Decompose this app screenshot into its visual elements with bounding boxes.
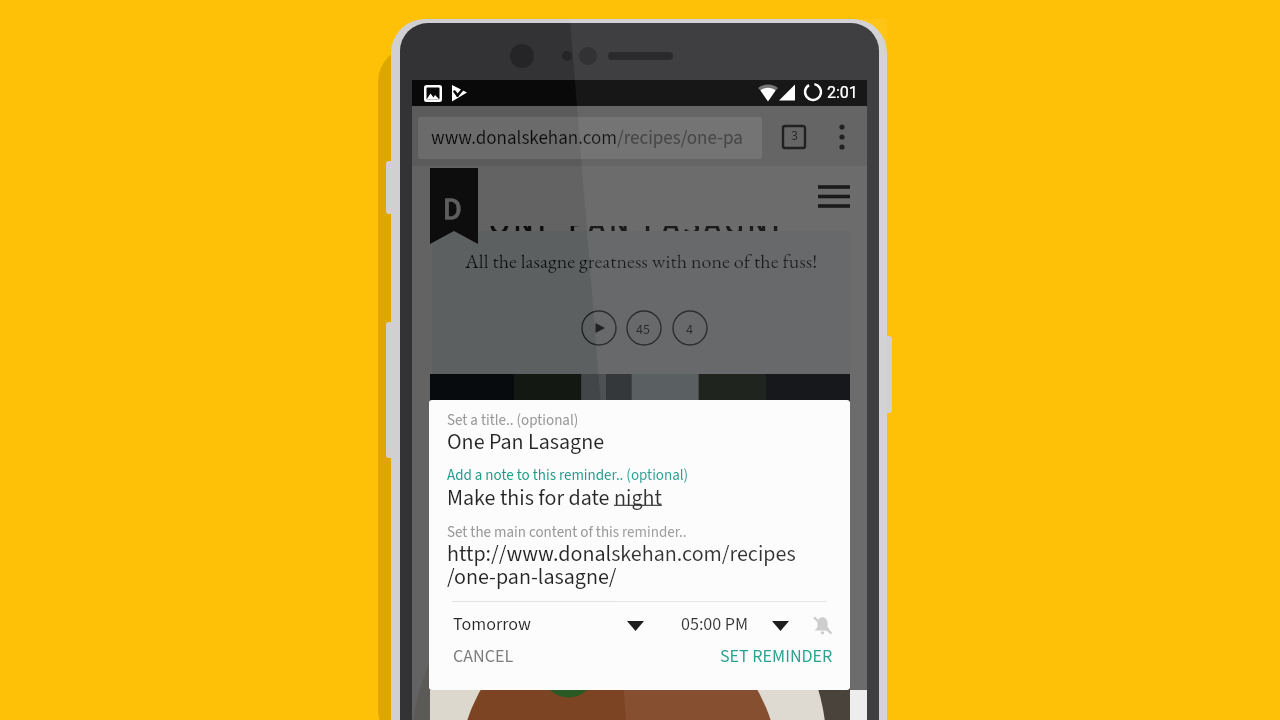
staticText: http://www.donalskehan.com/recipes /one-… (447, 538, 796, 593)
staticText: Set a title.. (optional) (447, 410, 579, 431)
staticText: Tomorrow (453, 612, 531, 638)
staticText: 45 (636, 320, 650, 340)
button[interactable]: Menu (816, 185, 852, 209)
staticText: 2:01 (827, 83, 858, 102)
button[interactable]: Tomorrow (447, 607, 652, 643)
staticText: night (614, 482, 662, 513)
staticText: SET REMINDER (720, 644, 833, 670)
staticText: CANCEL (453, 644, 514, 670)
button[interactable]: CANCEL (441, 641, 526, 673)
staticText: www.donalskehan.com (431, 125, 617, 152)
staticText: All the lasagne greatness with none of t… (465, 248, 818, 274)
button[interactable]: www.donalskehan.com (418, 117, 762, 159)
staticText: 05:00 PM (681, 612, 749, 638)
staticText: Make this for date (447, 482, 614, 513)
staticText: 3 (791, 126, 798, 146)
button[interactable]: SET REMINDER (708, 641, 845, 673)
staticText: D (443, 188, 462, 231)
button[interactable]: Tabs (782, 125, 806, 149)
staticText: /recipes/one-pa (617, 125, 743, 152)
staticText: ONE PAN LASAGNE (489, 202, 792, 246)
staticText: One Pan Lasagne (447, 426, 605, 457)
staticText: Set the main content of this reminder.. (447, 522, 687, 543)
button[interactable]: 05:00 PM (674, 607, 794, 643)
staticText: 4 (686, 320, 693, 340)
staticText: Add a note to this reminder.. (optional) (447, 465, 689, 486)
button[interactable]: More options (830, 122, 854, 152)
button[interactable]: Notifications off (806, 609, 838, 641)
